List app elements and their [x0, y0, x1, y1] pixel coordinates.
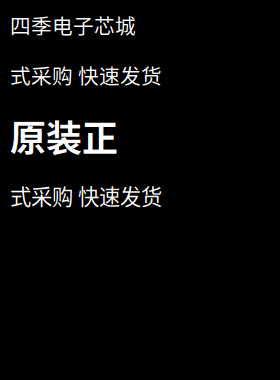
staticText: 四季电子芯城 — [10, 10, 136, 40]
staticText: 原装正 — [10, 110, 118, 162]
staticText: 式采购 快速发货 — [10, 60, 162, 90]
staticText: 式采购 快速发货 — [10, 180, 162, 211]
